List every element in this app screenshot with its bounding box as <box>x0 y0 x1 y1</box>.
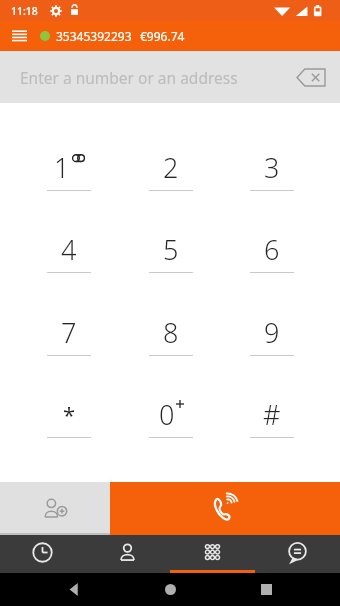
staticText: 5 <box>163 231 179 265</box>
button[interactable]: Dialpad <box>170 535 255 573</box>
staticText: * <box>63 399 76 429</box>
staticText: 35345392293 <box>56 28 132 44</box>
button[interactable]: Backspace <box>291 59 333 95</box>
staticText: 7 <box>61 314 77 348</box>
staticText: €996.74 <box>140 28 185 44</box>
button[interactable]: Back <box>68 583 81 596</box>
button[interactable]: 1 <box>30 147 108 191</box>
staticText: 6 <box>264 231 280 265</box>
staticText: 3 <box>264 149 280 183</box>
staticText: 11:18 <box>11 4 38 18</box>
staticText: 2 <box>163 149 179 183</box>
staticText: Enter a number or an address <box>20 67 238 88</box>
button[interactable]: 9 <box>233 312 311 356</box>
button[interactable]: # <box>233 394 311 438</box>
button[interactable]: 2 <box>132 147 210 191</box>
button[interactable]: 8 <box>132 312 210 356</box>
button[interactable]: Recent calls <box>0 535 85 573</box>
button[interactable]: Messages <box>255 535 340 573</box>
button[interactable]: * <box>30 394 108 438</box>
button[interactable]: 7 <box>30 312 108 356</box>
staticText: 9 <box>264 314 280 348</box>
staticText: 4 <box>61 231 77 265</box>
button[interactable]: 0 <box>132 394 210 438</box>
button[interactable]: Open navigation menu <box>6 23 32 49</box>
button[interactable]: Home <box>165 584 176 595</box>
button[interactable]: Contacts <box>85 535 170 573</box>
staticText: 0 <box>159 396 175 430</box>
staticText: 8 <box>163 314 179 348</box>
button[interactable]: Call <box>110 482 340 533</box>
button[interactable]: 6 <box>233 229 311 273</box>
button[interactable]: 4 <box>30 229 108 273</box>
staticText: 1 <box>54 149 70 183</box>
staticText: # <box>263 396 281 430</box>
button[interactable]: 3 <box>233 147 311 191</box>
button[interactable]: Add contact <box>0 482 110 533</box>
button[interactable]: 5 <box>132 229 210 273</box>
